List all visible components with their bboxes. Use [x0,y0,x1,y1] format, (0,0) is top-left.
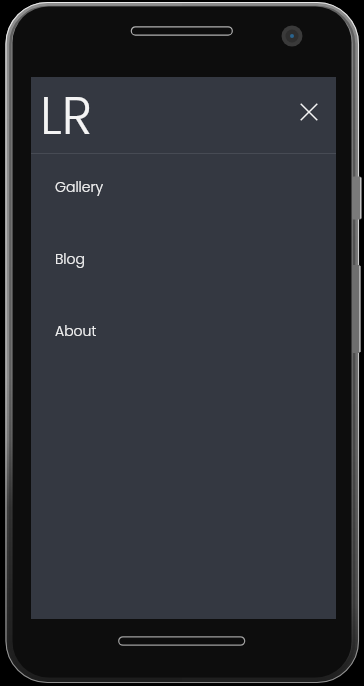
staticText: LR [40,80,93,152]
button[interactable]: About [31,298,336,370]
button[interactable]: Blog [31,226,336,298]
staticText: About [55,321,97,341]
button[interactable]: Close menu [291,94,327,130]
staticText: Gallery [55,177,104,197]
button[interactable]: Gallery [31,154,336,226]
staticText: Blog [55,249,86,269]
